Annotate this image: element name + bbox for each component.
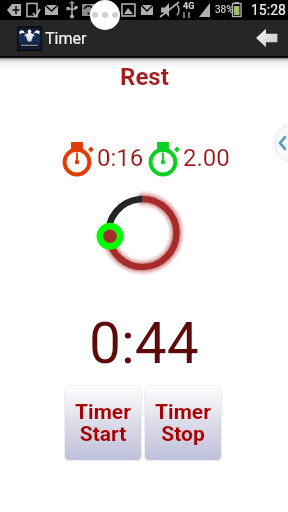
staticText: 0:44 (89, 310, 199, 377)
staticText: Timer Start (75, 400, 131, 447)
button[interactable]: Back (254, 25, 280, 51)
staticText: 15:28 (251, 2, 286, 18)
button[interactable]: Timer Start (64, 385, 142, 461)
button[interactable]: Open side panel (268, 118, 288, 168)
staticText: Timer (45, 29, 87, 48)
button[interactable]: More options (90, 0, 120, 30)
staticText: Timer Stop (155, 400, 211, 447)
staticText: 0:16 (97, 144, 144, 172)
staticText: Rest (120, 63, 169, 91)
staticText: 2.00 (183, 144, 230, 172)
staticText: 4G (183, 1, 195, 12)
button[interactable]: Timer Stop (144, 385, 222, 461)
staticText: 38% (215, 4, 234, 16)
